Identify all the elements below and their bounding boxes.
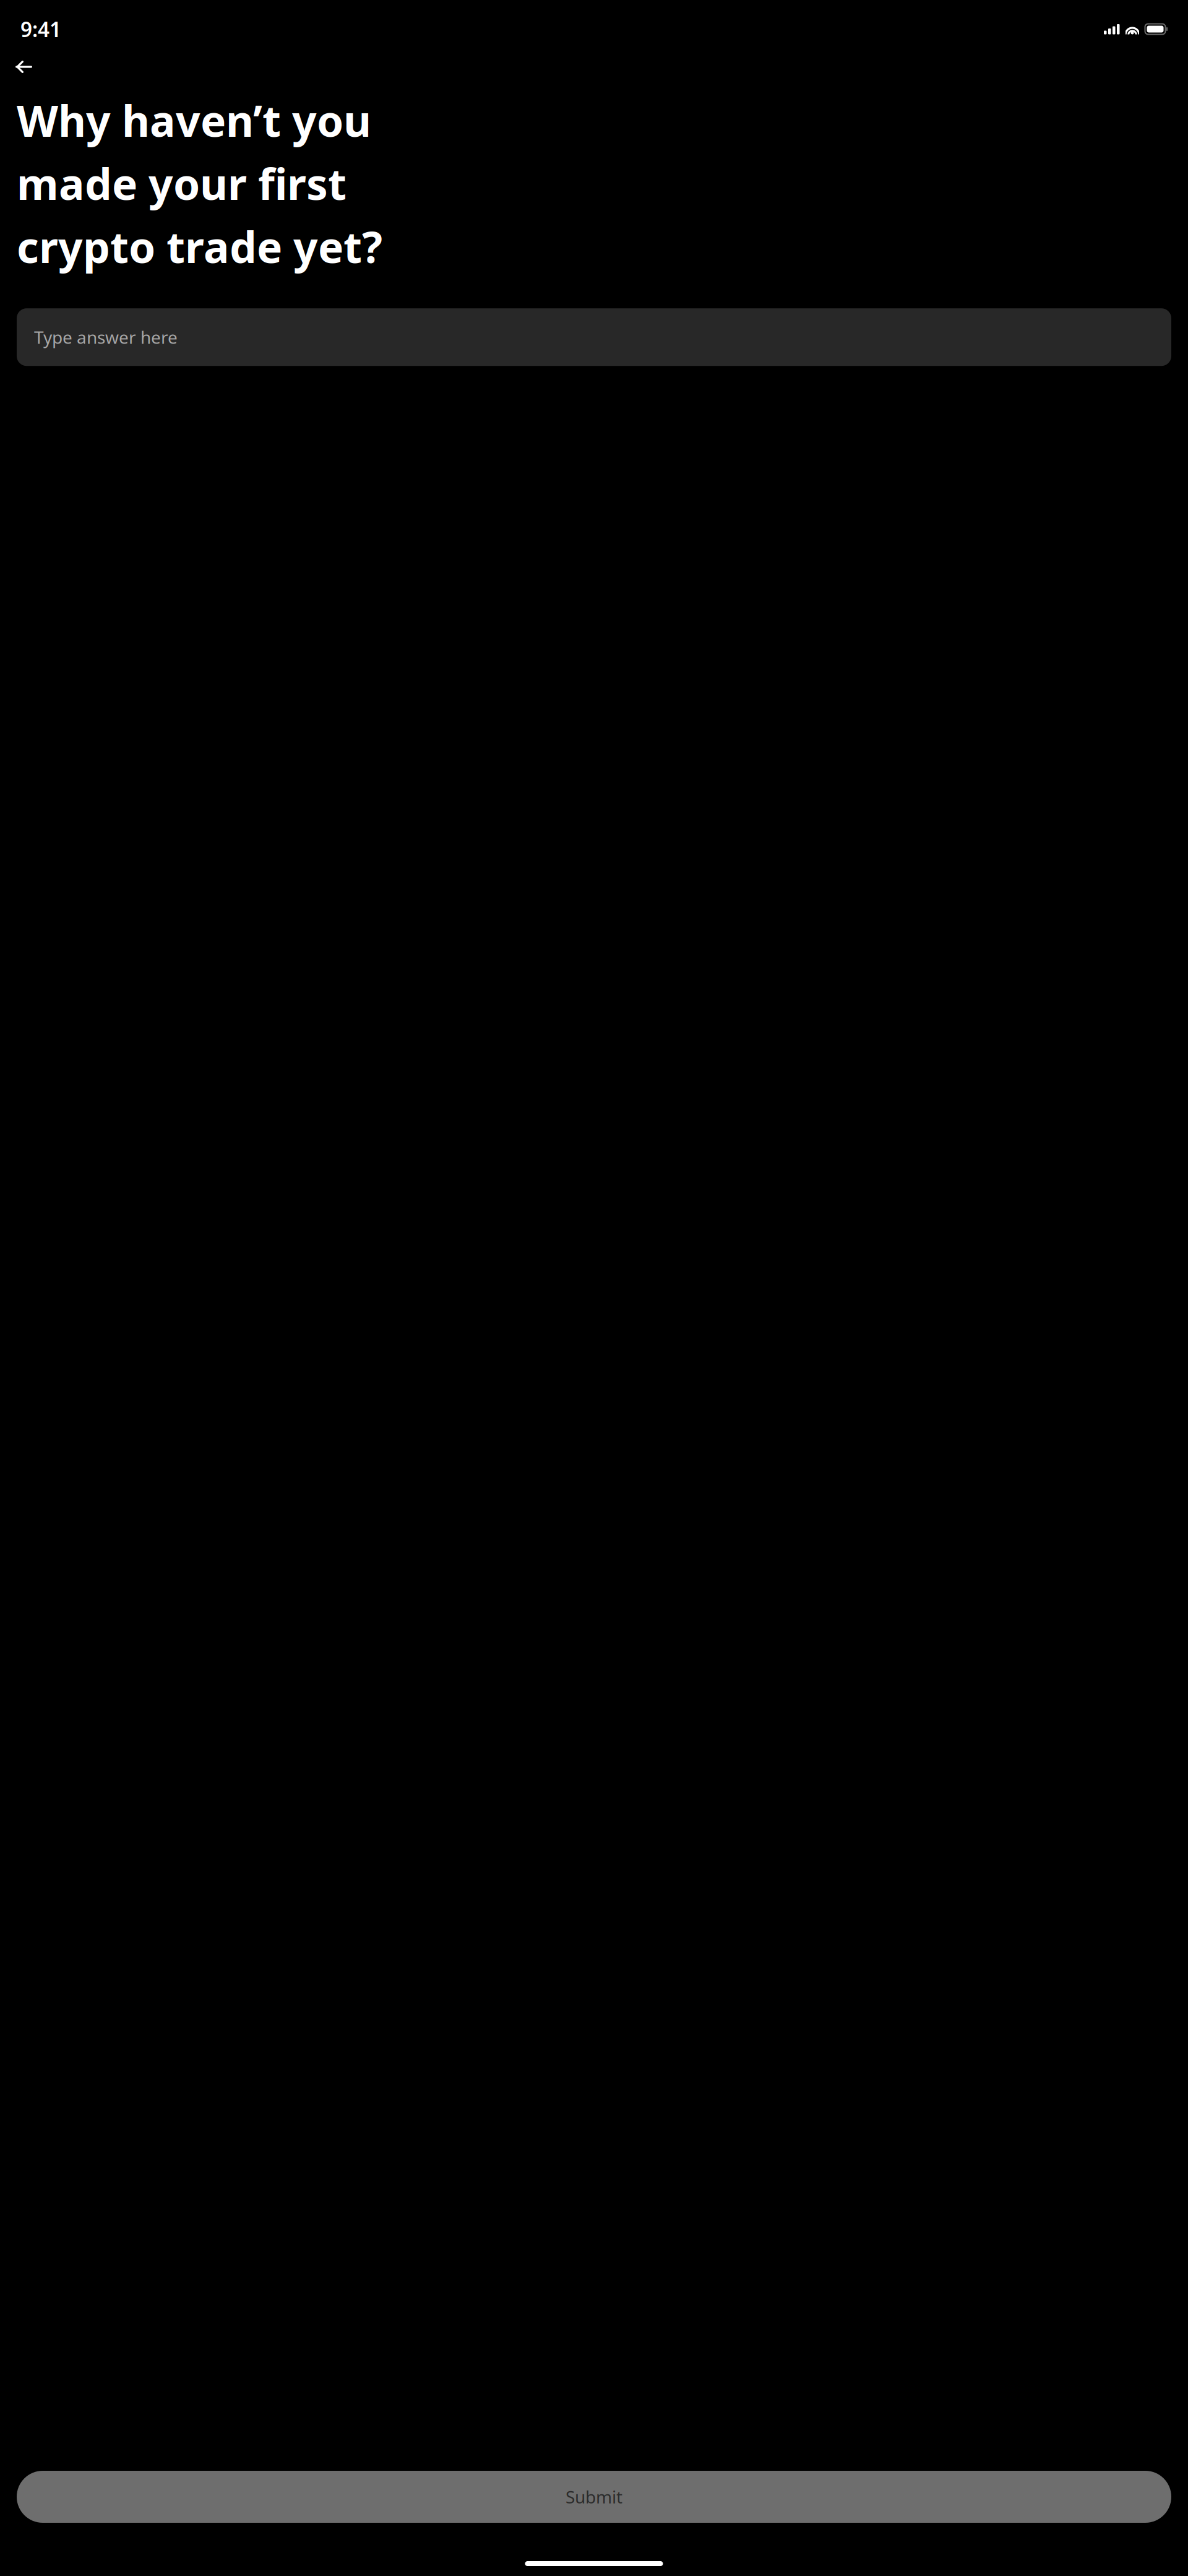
button[interactable]: Type answer here: [17, 308, 1171, 366]
staticText: crypto trade yet?: [17, 218, 382, 275]
button[interactable]: Back: [15, 51, 48, 83]
staticText: Submit: [566, 2485, 622, 2508]
button[interactable]: Submit: [17, 2471, 1171, 2523]
staticText: Why haven’t you: [17, 92, 371, 149]
staticText: made your first: [17, 155, 346, 212]
staticText: 9:41: [20, 15, 61, 43]
staticText: Type answer here: [34, 326, 178, 349]
